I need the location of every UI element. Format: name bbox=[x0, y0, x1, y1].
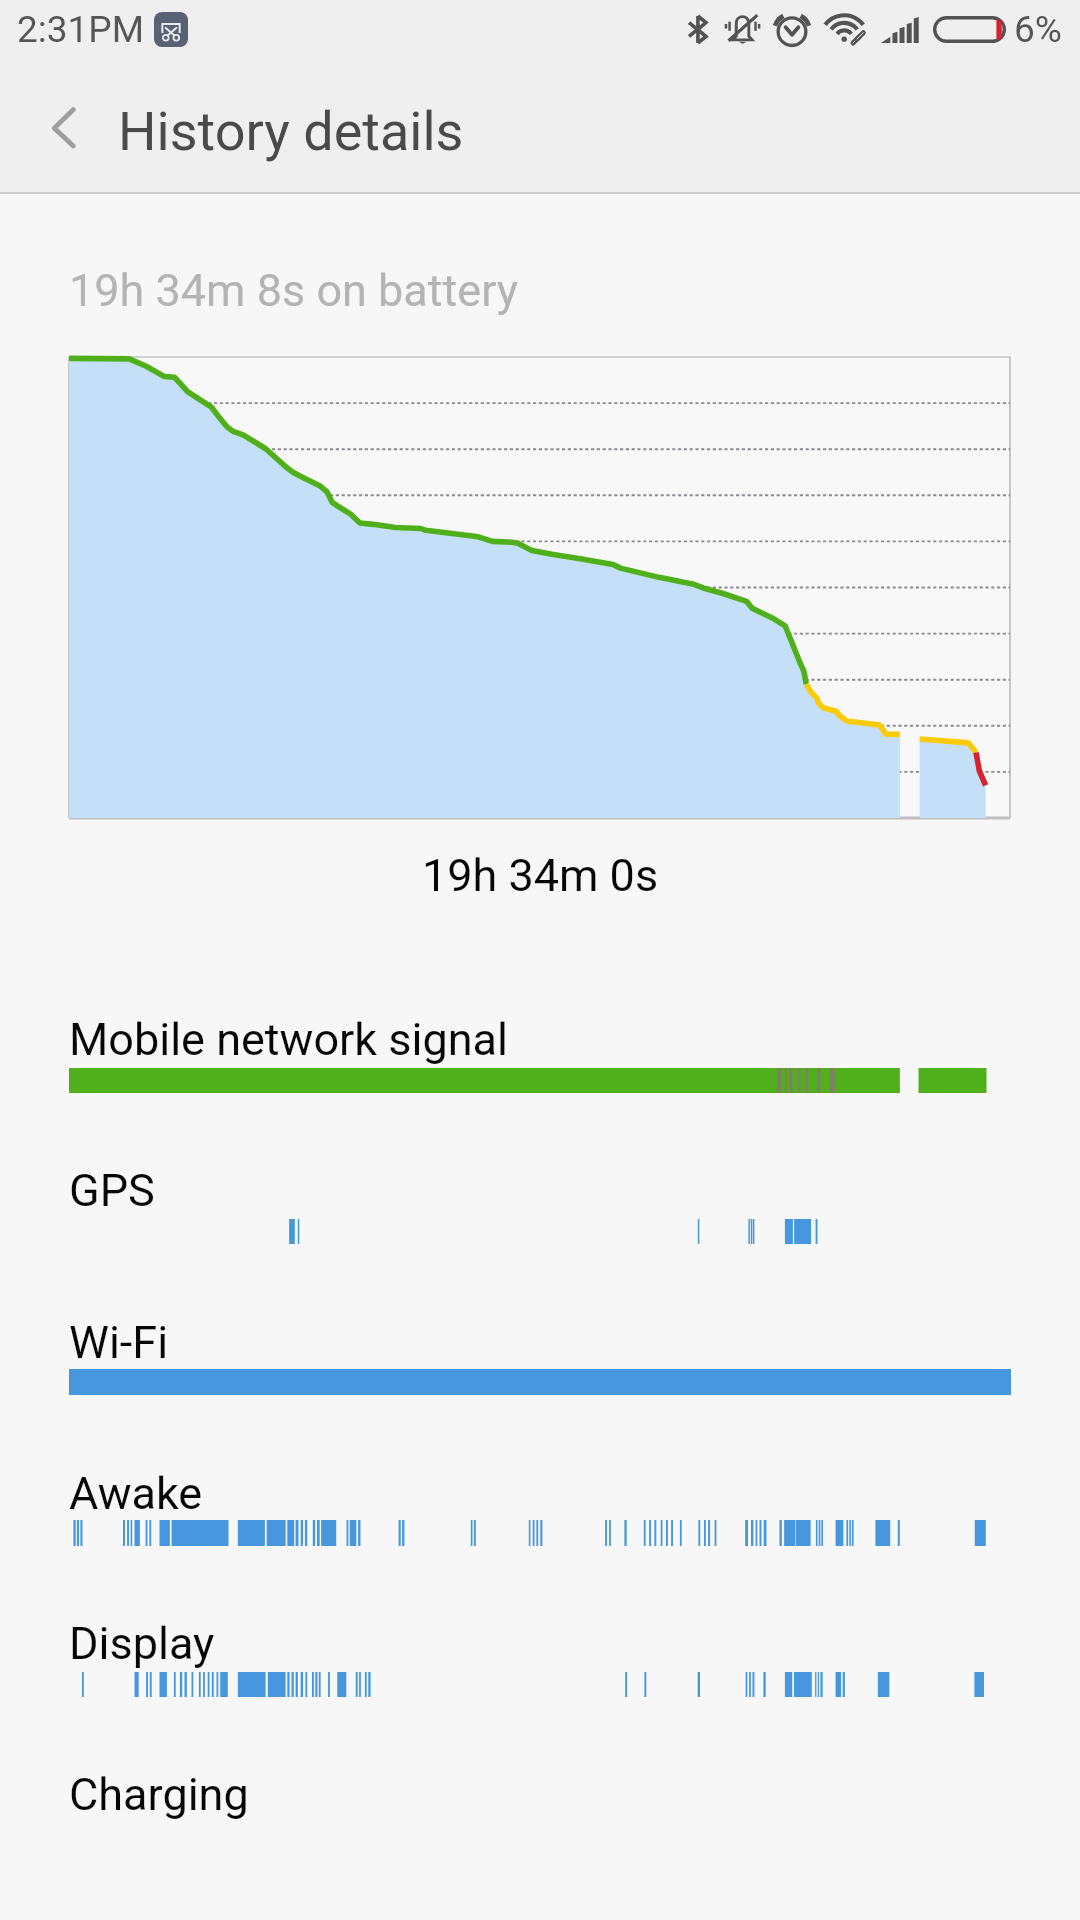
staticText: Mobile network signal bbox=[69, 1013, 508, 1066]
staticText: Awake bbox=[69, 1467, 203, 1520]
staticText: 19h 34m 8s on battery bbox=[69, 264, 519, 317]
staticText: 2:31PM bbox=[17, 8, 144, 51]
button[interactable]: Screenshot bbox=[154, 12, 188, 47]
staticText: History details bbox=[118, 100, 464, 163]
button[interactable]: Back bbox=[28, 90, 106, 168]
staticText: 6% bbox=[1014, 8, 1062, 51]
staticText: Display bbox=[69, 1617, 215, 1670]
staticText: 19h 34m 0s bbox=[0, 849, 1080, 902]
staticText: Wi-Fi bbox=[69, 1316, 169, 1369]
staticText: GPS bbox=[69, 1164, 155, 1217]
staticText: Charging bbox=[69, 1768, 249, 1821]
